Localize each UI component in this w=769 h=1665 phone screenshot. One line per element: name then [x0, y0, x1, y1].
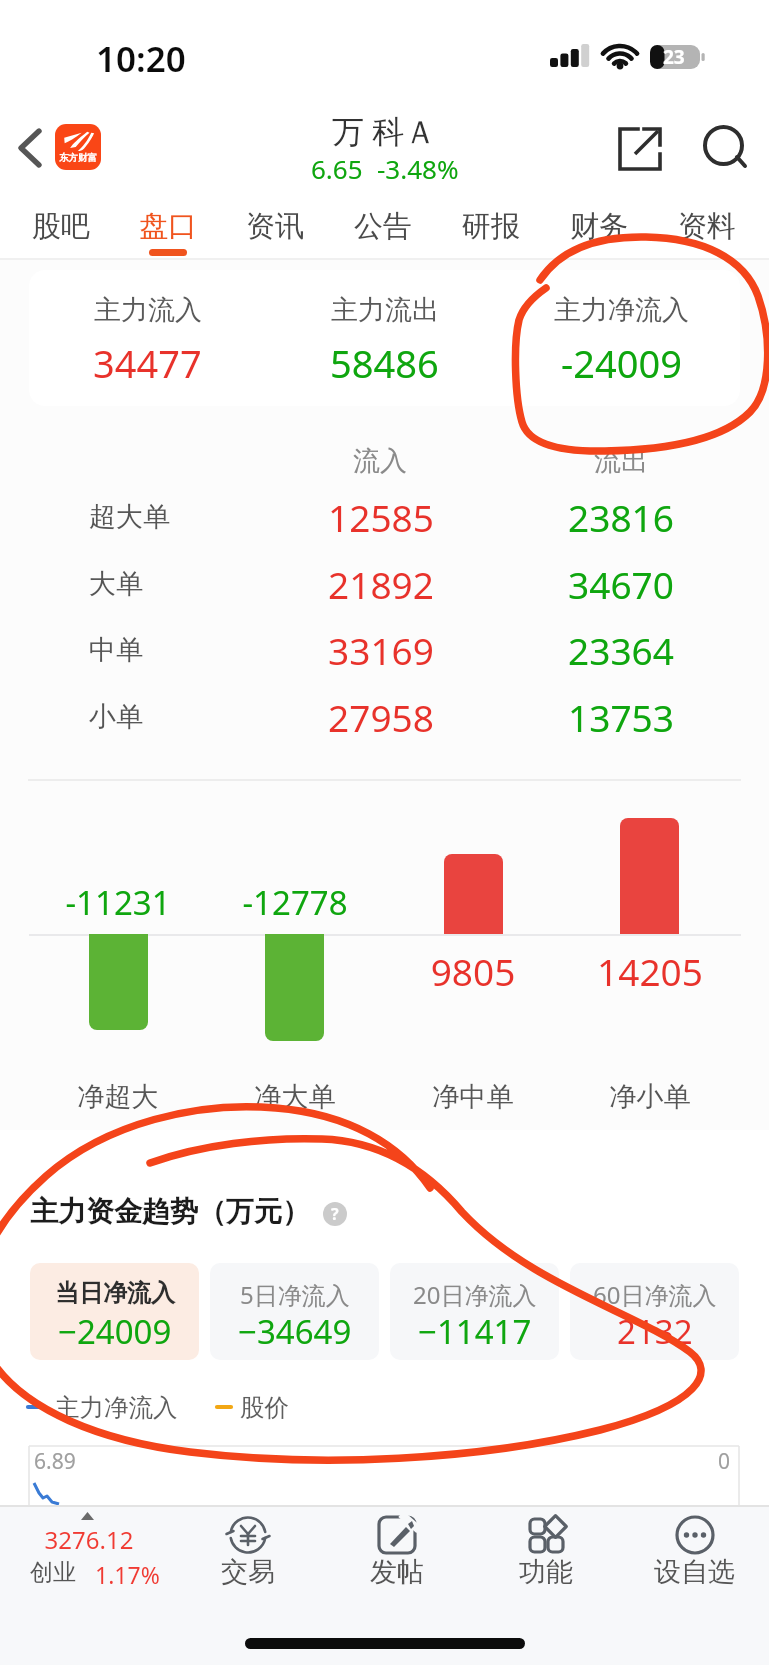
staticText: 财务: [570, 208, 628, 245]
staticText: 小单: [89, 700, 143, 734]
staticText: 23364: [461, 625, 769, 675]
button[interactable]: 小单: [0, 686, 769, 752]
staticText: 资讯: [246, 208, 304, 245]
staticText: 主力净流入: [554, 293, 689, 327]
staticText: 功能: [519, 1555, 573, 1589]
button[interactable]: 中单: [0, 619, 769, 685]
button[interactable]: Add to watchlist: [620, 1505, 769, 1605]
button[interactable]: 股吧: [7, 195, 114, 258]
staticText: 净小单: [490, 1080, 769, 1114]
staticText: 6.89: [34, 1447, 76, 1476]
staticText: 交易: [221, 1555, 275, 1589]
staticText: 23816: [461, 492, 769, 542]
staticText: 流入: [220, 444, 540, 478]
staticText: 设自选: [654, 1555, 735, 1589]
button[interactable]: Back: [0, 105, 56, 195]
button[interactable]: Search: [686, 113, 762, 187]
staticText: −24009: [58, 1309, 172, 1354]
staticText: -24009: [561, 337, 682, 389]
button[interactable]: 超大单: [0, 486, 769, 552]
staticText: 34670: [461, 559, 769, 609]
staticText: 9805: [313, 946, 633, 996]
button[interactable]: 3276.12: [0, 1505, 173, 1605]
button[interactable]: 盘口: [114, 195, 221, 258]
staticText: 3276.12: [9, 1523, 169, 1556]
staticText: 13753: [461, 692, 769, 742]
staticText: 21892: [221, 559, 541, 609]
staticText: -12778: [135, 880, 455, 925]
staticText: 5日净流入: [240, 1278, 350, 1311]
staticText: 主力流入: [94, 293, 202, 327]
staticText: 主力流出: [331, 293, 439, 327]
button[interactable]: 资料: [653, 195, 761, 258]
staticText: 1.17%: [95, 1559, 160, 1590]
staticText: 33169: [221, 625, 541, 675]
button[interactable]: Functions: [471, 1505, 620, 1605]
staticText: 超大单: [89, 500, 170, 534]
other: Trade: [228, 1515, 268, 1555]
button[interactable]: 主力流入: [29, 270, 740, 406]
staticText: 2132: [617, 1309, 693, 1354]
button[interactable]: Post: [322, 1505, 471, 1605]
staticText: 净大单: [135, 1080, 455, 1114]
button[interactable]: 60日净流入: [570, 1263, 739, 1360]
button[interactable]: Trade: [173, 1505, 322, 1605]
staticText: 主力资金趋势（万元）: [30, 1194, 310, 1229]
staticText: 6.65: [311, 151, 363, 186]
staticText: 资料: [678, 208, 736, 245]
staticText: -3.48%: [377, 151, 459, 186]
staticText: -11231: [0, 880, 278, 925]
staticText: 净超大: [0, 1080, 278, 1114]
button[interactable]: 20日净流入: [390, 1263, 559, 1360]
staticText: 东方财富: [59, 152, 97, 164]
button[interactable]: 财务: [545, 195, 653, 258]
other: Add to watchlist: [675, 1515, 715, 1555]
staticText: 发帖: [370, 1555, 424, 1589]
staticText: 万 科Ａ: [332, 109, 437, 153]
staticText: 当日净流入: [55, 1278, 175, 1308]
button[interactable]: Help: [323, 1202, 347, 1226]
staticText: 创业: [30, 1558, 76, 1587]
button[interactable]: 当日净流入: [30, 1263, 199, 1360]
staticText: 12585: [221, 492, 541, 542]
staticText: 股吧: [32, 208, 90, 245]
staticText: 净中单: [313, 1080, 633, 1114]
button[interactable]: 研报: [437, 195, 545, 258]
button[interactable]: Share: [600, 113, 684, 187]
staticText: ?: [331, 1203, 339, 1225]
staticText: 23: [663, 44, 685, 68]
staticText: 研报: [462, 208, 520, 245]
staticText: 中单: [89, 633, 143, 667]
staticText: 主力净流入: [55, 1392, 178, 1423]
staticText: −34649: [238, 1309, 352, 1354]
staticText: 盘口: [139, 208, 197, 245]
staticText: 27958: [221, 692, 541, 742]
button[interactable]: 大单: [0, 553, 769, 619]
staticText: 14205: [490, 946, 769, 996]
staticText: 34477: [93, 337, 202, 389]
button[interactable]: East Money app logo: [55, 124, 101, 170]
staticText: −11417: [418, 1309, 532, 1354]
staticText: 10:20: [96, 35, 186, 83]
staticText: 0: [718, 1447, 731, 1476]
staticText: 58486: [330, 337, 439, 389]
staticText: 流出: [461, 444, 769, 478]
other: Functions: [526, 1515, 566, 1555]
staticText: 公告: [354, 208, 412, 245]
button[interactable]: 资讯: [221, 195, 329, 258]
button[interactable]: 5日净流入: [210, 1263, 379, 1360]
button[interactable]: 公告: [329, 195, 437, 258]
staticText: 20日净流入: [413, 1278, 537, 1311]
staticText: 股价: [240, 1392, 289, 1423]
other: Post: [377, 1515, 417, 1555]
staticText: 60日净流入: [593, 1278, 717, 1311]
staticText: 大单: [89, 567, 143, 601]
